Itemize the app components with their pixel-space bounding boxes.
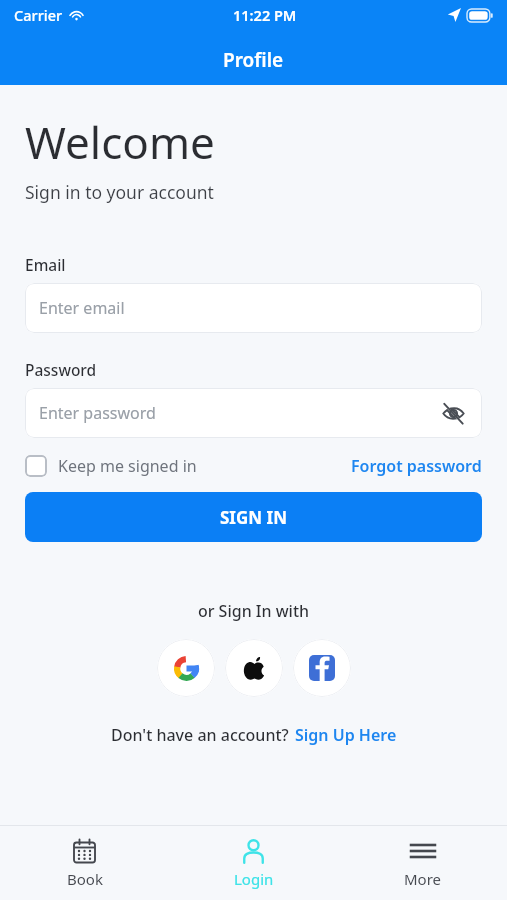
button[interactable]: Forgot password (351, 455, 482, 477)
button[interactable]: Book (0, 826, 169, 900)
button[interactable]: SIGN IN (25, 492, 482, 542)
button[interactable]: More (338, 826, 507, 900)
staticText: Sign Up Here (295, 724, 397, 746)
staticText: Enter email (39, 297, 468, 319)
button[interactable]: Sign Up Here (295, 724, 397, 746)
button[interactable]: Sign in with Facebook (293, 639, 351, 697)
button[interactable]: Show password (438, 398, 468, 428)
staticText: Profile (223, 47, 284, 73)
button[interactable]: Enter email (25, 283, 482, 333)
staticText: 11:22 PM (233, 5, 297, 25)
staticText: Email (25, 254, 66, 275)
staticText: Sign in to your account (25, 180, 214, 204)
staticText: Forgot password (351, 455, 482, 477)
staticText: Welcome (25, 112, 215, 172)
staticText: Keep me signed in (58, 455, 197, 477)
staticText: Book (67, 869, 103, 889)
button[interactable]: Keep me signed in (25, 455, 197, 477)
staticText: or Sign In with (0, 600, 507, 622)
staticText: Don't have an account? (111, 724, 289, 746)
button[interactable]: Sign in with Google (157, 639, 215, 697)
button[interactable]: Enter password (25, 388, 482, 438)
staticText: Password (25, 359, 97, 380)
staticText: Login (234, 869, 274, 889)
button[interactable]: Login (169, 826, 338, 900)
button[interactable]: Sign in with Apple (225, 639, 283, 697)
staticText: SIGN IN (220, 506, 287, 529)
staticText: Enter password (39, 402, 438, 424)
staticText: More (404, 869, 442, 889)
staticText: Carrier (14, 5, 63, 25)
